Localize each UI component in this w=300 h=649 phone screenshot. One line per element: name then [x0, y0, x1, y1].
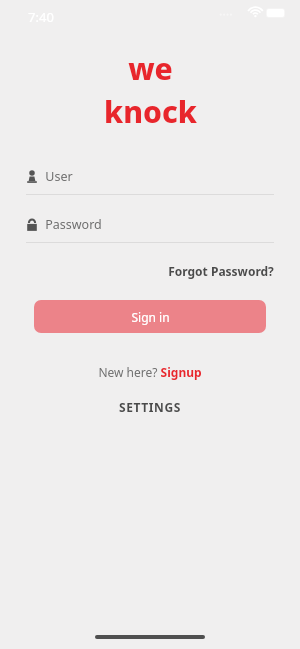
- staticText: we: [128, 48, 173, 89]
- staticText: knock: [104, 91, 197, 132]
- button[interactable]: New here? Signup: [26, 364, 274, 380]
- staticText: New here? Signup: [98, 364, 202, 380]
- staticText: Sign in: [131, 309, 170, 325]
- button[interactable]: Sign in: [34, 300, 266, 333]
- staticText: User: [45, 168, 73, 185]
- button[interactable]: Forgot Password?: [26, 263, 274, 279]
- button[interactable]: SETTINGS: [26, 399, 274, 415]
- staticText: SETTINGS: [119, 399, 181, 415]
- staticText: 7:40: [28, 8, 54, 26]
- staticText: Forgot Password?: [168, 263, 274, 279]
- staticText: Password: [45, 216, 102, 233]
